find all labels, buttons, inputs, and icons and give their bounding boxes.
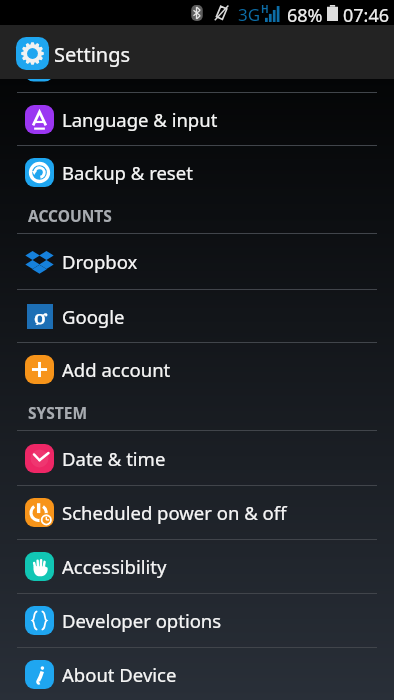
button[interactable]: Language & input [0, 93, 394, 145]
staticText: 3G [238, 3, 261, 26]
staticText: ACCOUNTS [28, 205, 112, 226]
staticText: Google [62, 304, 125, 329]
button[interactable]: About Device [0, 648, 394, 700]
staticText: Language & input [62, 107, 218, 132]
button[interactable]: Scheduled power on & off [0, 486, 394, 539]
staticText: SYSTEM [28, 402, 88, 423]
staticText: Scheduled power on & off [62, 500, 287, 525]
staticText: About Device [62, 662, 177, 687]
button[interactable]: Settings [0, 25, 394, 79]
staticText: 68% [287, 3, 323, 28]
staticText: Backup & reset [62, 160, 193, 185]
button[interactable]: g [0, 290, 394, 342]
staticText: Add account [62, 357, 171, 382]
button[interactable]: Accessibility [0, 540, 394, 593]
staticText: g [33, 304, 48, 325]
button[interactable]: Add account [0, 343, 394, 395]
staticText: Dropbox [62, 249, 138, 274]
staticText: H [261, 2, 269, 16]
button[interactable]: Backup & reset [0, 146, 394, 198]
button[interactable]: Developer options [0, 594, 394, 647]
staticText: Date & time [62, 446, 166, 471]
staticText: 07:46 [343, 3, 390, 28]
button[interactable]: Date & time [0, 431, 394, 485]
staticText: Settings [54, 41, 131, 68]
button[interactable]: Dropbox [0, 234, 394, 289]
staticText: Developer options [62, 608, 222, 633]
staticText: Accessibility [62, 554, 167, 579]
